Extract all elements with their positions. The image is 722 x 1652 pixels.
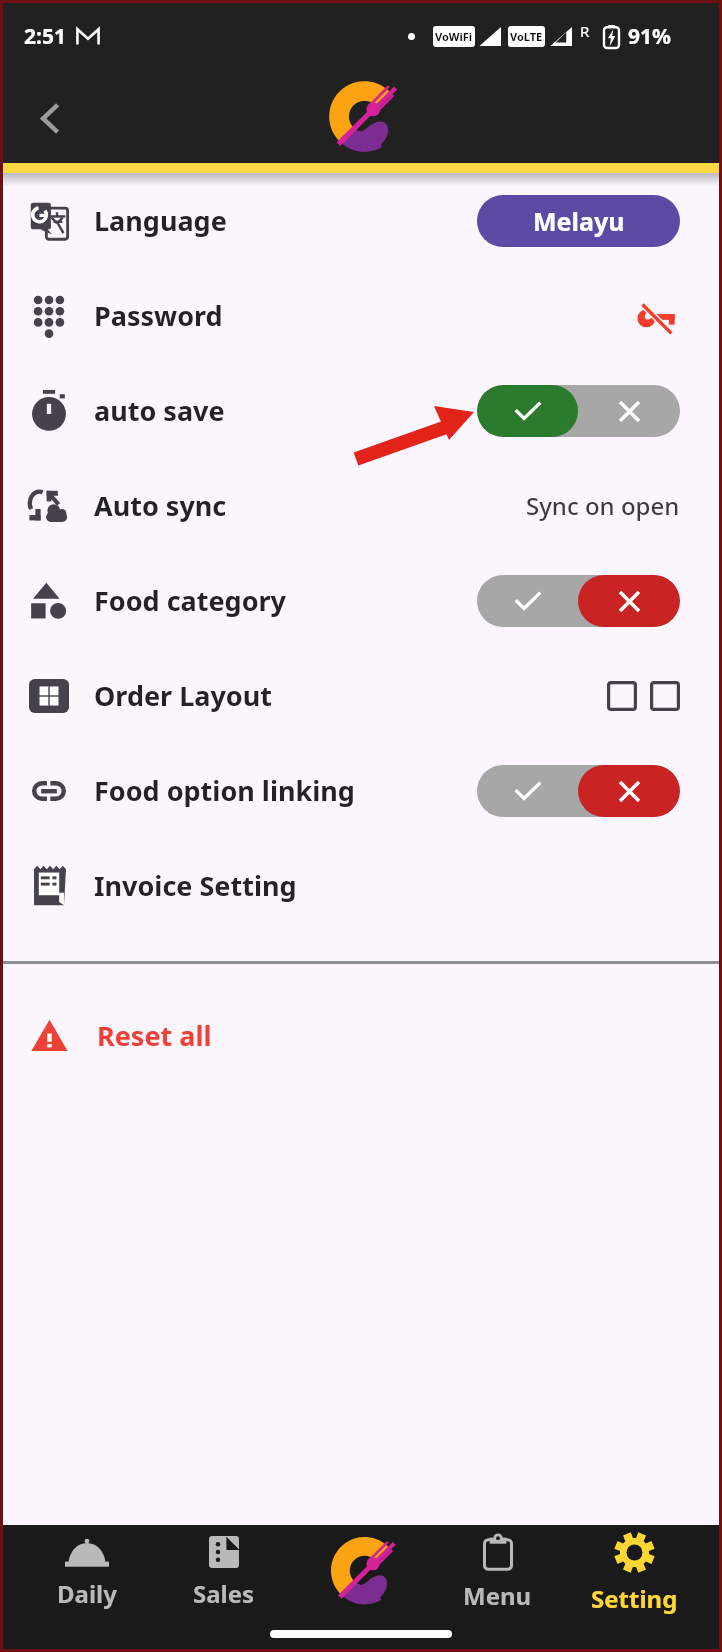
button[interactable]: Food category (0, 553, 722, 648)
button[interactable]: Layout option (607, 681, 637, 711)
button[interactable]: Enabled (477, 385, 680, 437)
button[interactable]: Password (0, 268, 722, 363)
staticText: Melayu (533, 204, 625, 238)
staticText: Daily (57, 1577, 117, 1610)
staticText: Invoice Setting (94, 867, 297, 904)
button[interactable]: Language (0, 173, 722, 268)
staticText: 91% (628, 22, 671, 51)
staticText: 2:51 (24, 22, 66, 51)
staticText: Menu (463, 1579, 532, 1612)
button[interactable]: Invoice Setting (0, 838, 722, 933)
button[interactable]: auto save (0, 363, 722, 458)
button[interactable]: Setting (566, 1525, 703, 1621)
button[interactable]: Password off (630, 291, 680, 341)
button[interactable]: Reset all (0, 964, 722, 1106)
button[interactable]: Disabled (477, 765, 680, 817)
staticText: Reset all (97, 1017, 212, 1054)
staticText: Food option linking (94, 772, 355, 809)
button[interactable]: Auto sync (0, 458, 722, 553)
button[interactable]: Disabled (477, 575, 680, 627)
button[interactable]: Melayu (477, 195, 680, 247)
staticText: Auto sync (94, 487, 227, 524)
staticText: Sales (193, 1577, 255, 1610)
staticText: Password (94, 297, 223, 334)
button[interactable]: Menu (429, 1525, 566, 1621)
staticText: VoLTE (510, 29, 543, 44)
staticText: auto save (94, 392, 225, 429)
button[interactable]: Home (292, 1525, 429, 1621)
button[interactable]: Order Layout (0, 648, 722, 743)
staticText: Order Layout (94, 677, 272, 714)
staticText: Setting (591, 1582, 678, 1615)
button[interactable]: Layout option (650, 681, 680, 711)
button[interactable]: Back (26, 95, 72, 141)
staticText: Language (94, 202, 227, 239)
button[interactable]: Sales (155, 1525, 292, 1621)
staticText: Sync on open (526, 489, 680, 522)
staticText: VoWiFi (435, 29, 473, 44)
button[interactable]: Food option linking (0, 743, 722, 838)
staticText: R (580, 21, 590, 41)
button[interactable]: Daily (19, 1525, 155, 1621)
staticText: Food category (94, 582, 287, 619)
